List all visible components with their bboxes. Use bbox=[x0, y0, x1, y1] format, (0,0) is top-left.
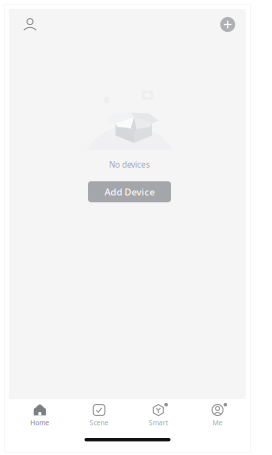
staticText: Home bbox=[30, 418, 49, 427]
button[interactable]: Profile bbox=[16, 10, 44, 38]
staticText: Add Device bbox=[104, 185, 154, 198]
button[interactable]: Add device bbox=[214, 10, 242, 38]
staticText: Me bbox=[213, 418, 223, 427]
staticText: Smart bbox=[149, 418, 168, 427]
button[interactable]: Scene bbox=[69, 399, 129, 427]
button[interactable]: Me bbox=[188, 399, 247, 427]
staticText: Scene bbox=[90, 418, 109, 427]
button[interactable]: Home bbox=[10, 399, 69, 427]
staticText: No devices bbox=[109, 159, 150, 170]
button[interactable]: Add Device bbox=[88, 181, 171, 202]
button[interactable]: Smart bbox=[129, 399, 188, 427]
